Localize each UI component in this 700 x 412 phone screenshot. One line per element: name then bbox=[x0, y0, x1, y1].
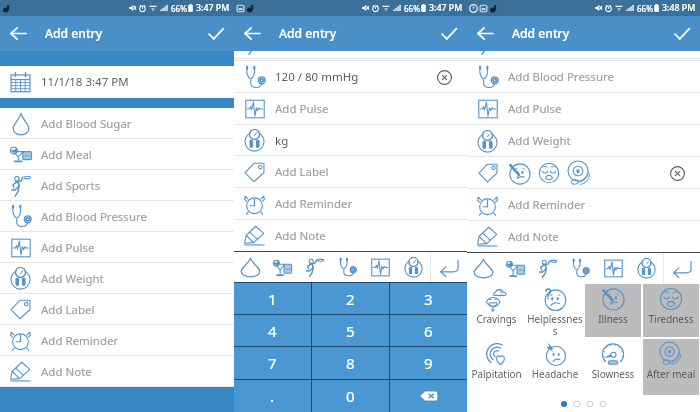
staticText: Add Blood Pressure bbox=[508, 69, 614, 85]
button[interactable]: Clear bbox=[422, 61, 467, 93]
button[interactable]: Save bbox=[198, 16, 234, 51]
staticText: Add Meal bbox=[41, 147, 92, 163]
button[interactable]: 3 bbox=[390, 283, 467, 314]
button[interactable]: Add Label bbox=[234, 156, 467, 188]
button[interactable]: Add Note bbox=[467, 221, 700, 252]
button[interactable]: Add Reminder bbox=[234, 188, 467, 220]
button[interactable]: 5 bbox=[312, 315, 389, 346]
staticText: Add Note bbox=[275, 228, 326, 244]
button[interactable]: 7 bbox=[234, 347, 311, 379]
button[interactable]: 6 bbox=[390, 315, 467, 346]
button[interactable]: Add Note bbox=[0, 356, 234, 387]
button[interactable]: Add Reminder bbox=[467, 189, 700, 221]
button[interactable]: Weight bbox=[630, 253, 663, 283]
staticText: 7 bbox=[268, 353, 277, 373]
staticText: Add Blood Sugar bbox=[41, 116, 132, 132]
button[interactable]: Meal bbox=[499, 253, 531, 283]
button[interactable]: Meal bbox=[266, 252, 298, 282]
button[interactable]: 0 bbox=[312, 380, 389, 412]
button[interactable]: Pulse bbox=[597, 253, 630, 283]
button[interactable]: Enter bbox=[431, 252, 467, 282]
button[interactable]: Add Meal bbox=[0, 139, 234, 170]
button[interactable]: Sports bbox=[531, 253, 564, 283]
button[interactable]: Backspace bbox=[390, 380, 467, 412]
button[interactable]: Blood pressure bbox=[564, 253, 597, 283]
button[interactable]: 4 bbox=[234, 315, 311, 346]
staticText: Add Reminder bbox=[275, 196, 353, 212]
button[interactable]: After meal bbox=[643, 339, 699, 395]
staticText: Slowness bbox=[585, 367, 641, 380]
button[interactable]: 1 bbox=[234, 283, 311, 314]
button[interactable]: Add Blood Pressure bbox=[467, 61, 700, 93]
button[interactable]: 8 bbox=[312, 347, 389, 379]
staticText: 2 bbox=[346, 289, 355, 309]
button[interactable]: Tiredness bbox=[643, 284, 699, 337]
button[interactable]: Back bbox=[234, 16, 270, 51]
button[interactable]: Save bbox=[664, 16, 700, 51]
button[interactable]: Headache bbox=[527, 339, 583, 395]
staticText: Cravings bbox=[468, 312, 525, 325]
button[interactable]: Palpitation bbox=[468, 339, 525, 395]
button[interactable]: Add Blood Sugar bbox=[0, 108, 234, 139]
button[interactable]: Blood sugar bbox=[467, 253, 499, 283]
button[interactable]: Clear bbox=[467, 157, 700, 189]
button[interactable]: Cravings bbox=[468, 284, 525, 337]
button[interactable]: Add Pulse bbox=[234, 93, 467, 125]
button[interactable]: 9 bbox=[390, 347, 467, 379]
button[interactable]: Add Note bbox=[234, 220, 467, 251]
button[interactable]: 11/1/18 3:47 PM bbox=[0, 66, 234, 98]
button[interactable]: kg bbox=[234, 125, 467, 156]
staticText: Add Label bbox=[41, 302, 95, 318]
staticText: Add Blood Pressure bbox=[41, 209, 147, 225]
button[interactable]: Enter bbox=[664, 253, 700, 283]
staticText: Add entry bbox=[512, 25, 570, 42]
staticText: 3:47 PM bbox=[429, 2, 463, 14]
button[interactable]: Add Reminder bbox=[0, 325, 234, 356]
button[interactable]: Helplessness bbox=[527, 284, 583, 337]
button[interactable]: Add Blood Pressure bbox=[0, 201, 234, 232]
staticText: Palpitation bbox=[468, 367, 525, 380]
staticText: Headache bbox=[527, 367, 583, 380]
button[interactable]: Back bbox=[467, 16, 503, 51]
staticText: Add Pulse bbox=[508, 101, 562, 117]
staticText: 11/1/18 3:47 PM bbox=[41, 74, 129, 90]
button[interactable]: 2 bbox=[312, 283, 389, 314]
staticText: 8 bbox=[346, 353, 355, 373]
button[interactable]: Illness bbox=[585, 284, 641, 337]
staticText: 6 bbox=[424, 321, 433, 341]
button[interactable]: Sports bbox=[298, 252, 331, 282]
staticText: Add Weight bbox=[41, 271, 104, 287]
button[interactable]: Add Weight bbox=[467, 125, 700, 157]
button[interactable]: Back bbox=[0, 16, 36, 51]
button[interactable]: Clear bbox=[655, 157, 700, 189]
staticText: Add Reminder bbox=[41, 333, 119, 349]
button[interactable]: Add Weight bbox=[0, 263, 234, 294]
button[interactable]: Add Pulse bbox=[0, 232, 234, 263]
staticText: 5 bbox=[346, 321, 355, 341]
staticText: After meal bbox=[643, 367, 699, 380]
button[interactable]: Add Sports bbox=[234, 51, 467, 59]
button[interactable]: Save bbox=[431, 16, 467, 51]
button[interactable]: Slowness bbox=[585, 339, 641, 395]
button[interactable]: 120 / 80 mmHg bbox=[234, 61, 467, 93]
button[interactable]: Add Sports bbox=[467, 51, 700, 59]
staticText: 9 bbox=[424, 353, 433, 373]
staticText: Add entry bbox=[279, 25, 337, 42]
button[interactable]: Add Sports bbox=[0, 170, 234, 201]
staticText: Add Weight bbox=[508, 133, 571, 149]
staticText: 120 / 80 mmHg bbox=[275, 69, 359, 85]
staticText: . bbox=[270, 386, 275, 406]
staticText: Helplessness bbox=[527, 312, 583, 337]
button[interactable]: Blood pressure bbox=[331, 252, 364, 282]
button[interactable]: Add Pulse bbox=[467, 93, 700, 125]
staticText: Add Note bbox=[41, 364, 92, 380]
button[interactable]: Blood sugar bbox=[234, 252, 266, 282]
staticText: Add Sports bbox=[41, 178, 101, 194]
staticText: Add Reminder bbox=[508, 197, 586, 213]
button[interactable]: Pulse bbox=[364, 252, 397, 282]
button[interactable]: Weight bbox=[397, 252, 430, 282]
button[interactable]: . bbox=[234, 380, 311, 412]
button[interactable]: Add Label bbox=[0, 294, 234, 325]
